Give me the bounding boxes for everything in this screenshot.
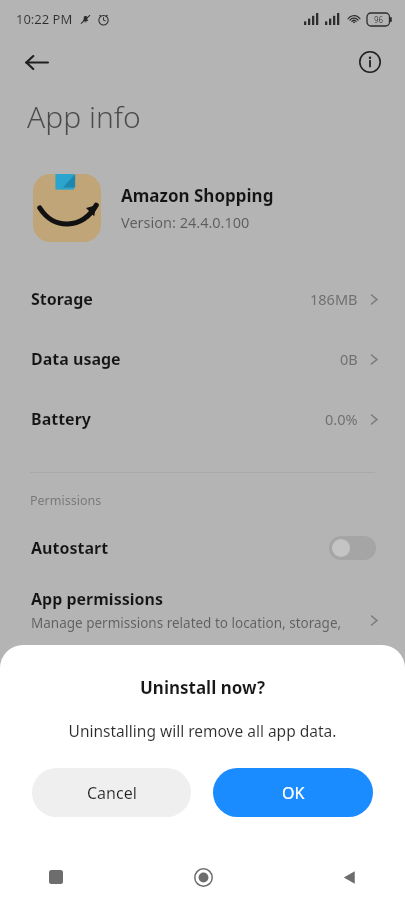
button[interactable]: Data usage [0,329,405,389]
staticText: Manage permissions related to location, … [31,614,342,632]
staticText: OK [282,782,305,804]
button[interactable]: Recent apps [34,855,78,899]
button[interactable]: App permissions [0,588,405,632]
staticText: Battery [31,408,91,430]
staticText: Uninstalling will remove all app data. [0,720,405,741]
staticText: Data usage [31,348,121,370]
staticText: Cancel [87,782,137,804]
button[interactable]: Cancel [32,768,191,817]
button[interactable]: Autostart [0,522,405,574]
button[interactable]: Autostart toggle [329,536,376,560]
staticText: Version: 24.4.0.100 [121,212,250,232]
staticText: 186MB [310,289,358,309]
button[interactable]: App details info [348,40,392,84]
staticText: 96 [374,14,384,25]
button[interactable]: Storage [0,269,405,329]
staticText: 0.0% [325,409,358,429]
button[interactable]: Home [181,855,225,899]
button[interactable]: Battery [0,389,405,449]
staticText: Permissions [30,492,102,509]
staticText: App info [27,96,141,137]
staticText: 0B [340,349,358,369]
staticText: 10:22 PM [16,10,73,28]
button[interactable]: Back [14,40,58,84]
button[interactable]: OK [213,768,373,817]
staticText: Amazon Shopping [121,184,274,207]
staticText: Storage [31,288,93,310]
button[interactable]: Back [327,855,371,899]
staticText: Autostart [31,537,109,559]
staticText: App permissions [31,588,163,610]
staticText: Uninstall now? [0,676,405,699]
